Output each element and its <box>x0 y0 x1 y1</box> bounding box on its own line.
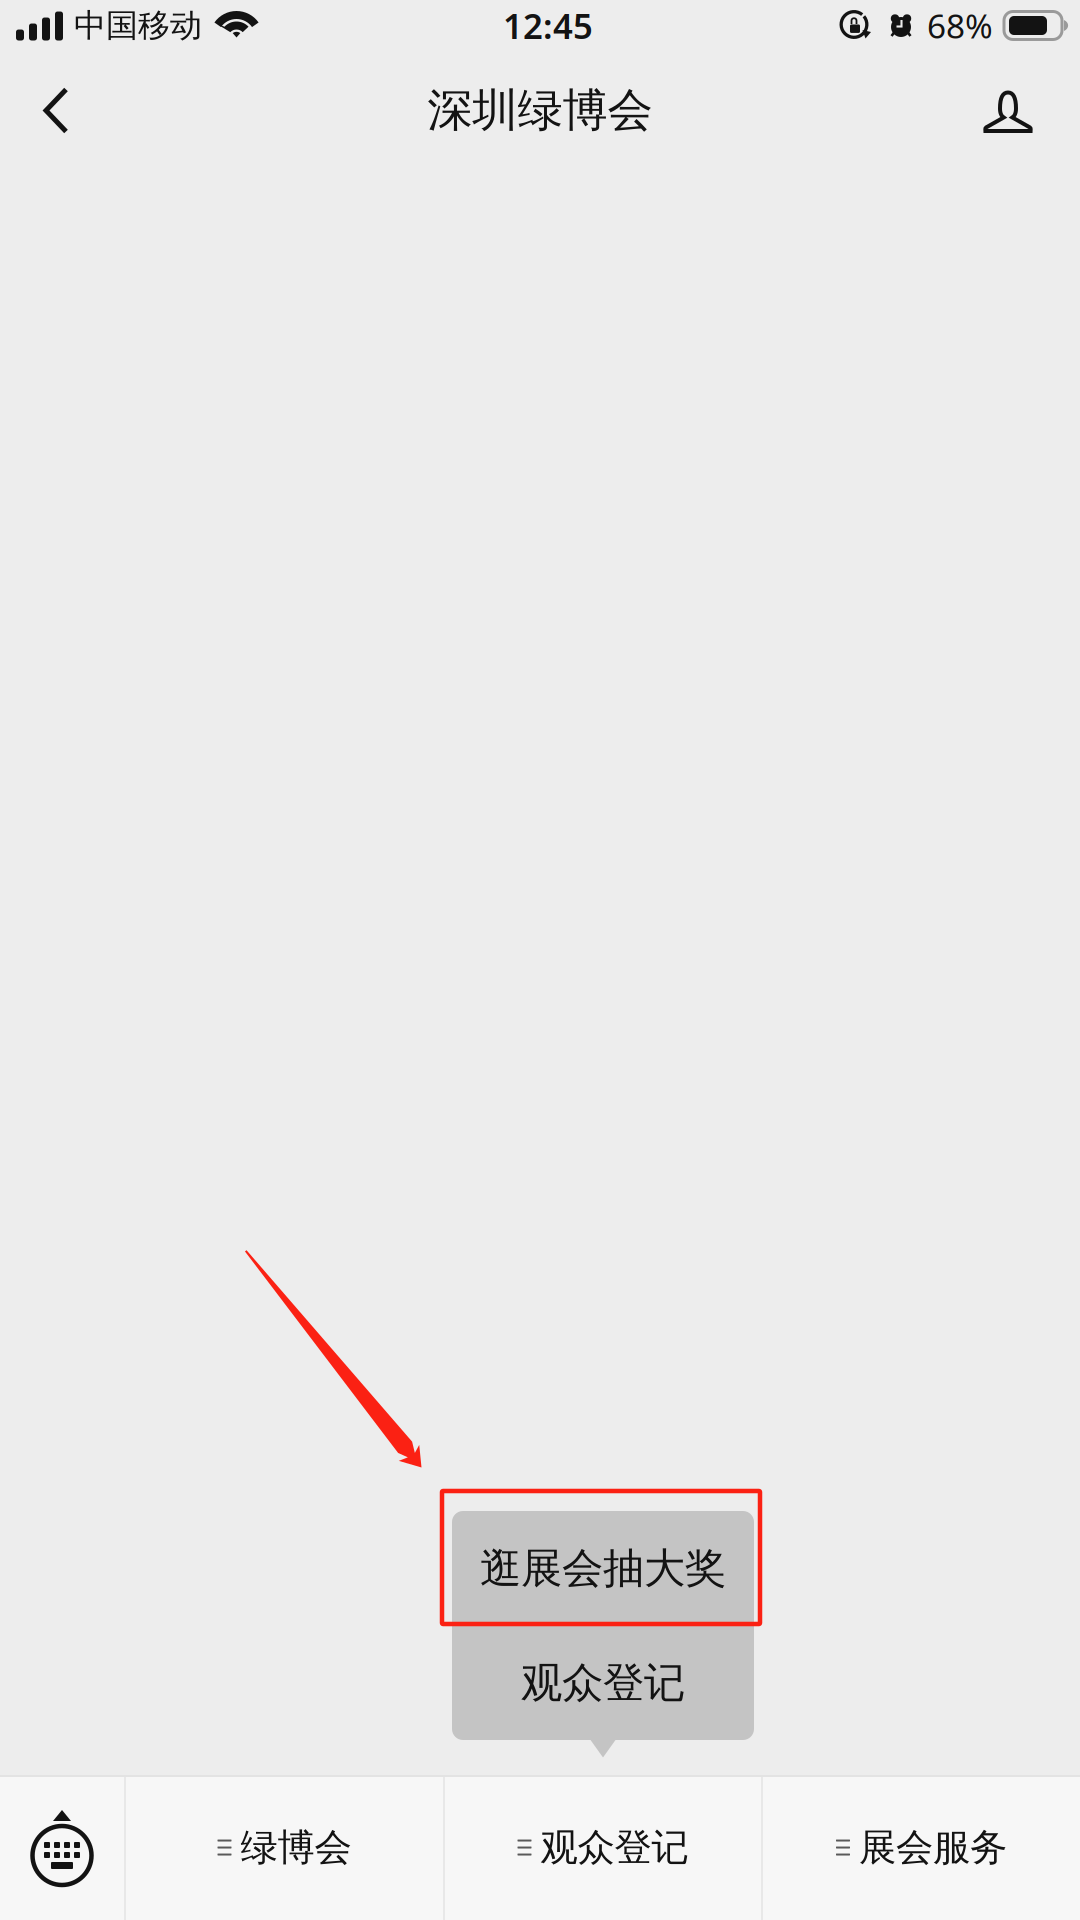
button[interactable]: 观众登记 <box>452 1626 754 1740</box>
staticText: 展会服务 <box>859 1825 1007 1870</box>
button[interactable]: 观众登记 <box>445 1775 761 1920</box>
button[interactable]: 逛展会抽大奖 <box>452 1511 754 1626</box>
staticText: 绿博会 <box>240 1825 351 1870</box>
staticText: 12:45 <box>503 2 593 48</box>
button[interactable]: 展会服务 <box>763 1775 1080 1920</box>
staticText: 逛展会抽大奖 <box>480 1543 726 1594</box>
staticText: 68% <box>927 3 993 48</box>
staticText: 观众登记 <box>540 1825 688 1870</box>
button[interactable]: Contact <box>960 62 1056 158</box>
button[interactable]: Keyboard <box>0 1775 124 1920</box>
staticText: 中国移动 <box>74 6 202 45</box>
staticText: 观众登记 <box>521 1658 685 1708</box>
button[interactable]: Back <box>8 62 104 158</box>
button[interactable]: 绿博会 <box>126 1775 443 1920</box>
staticText: 深圳绿博会 <box>427 83 652 138</box>
